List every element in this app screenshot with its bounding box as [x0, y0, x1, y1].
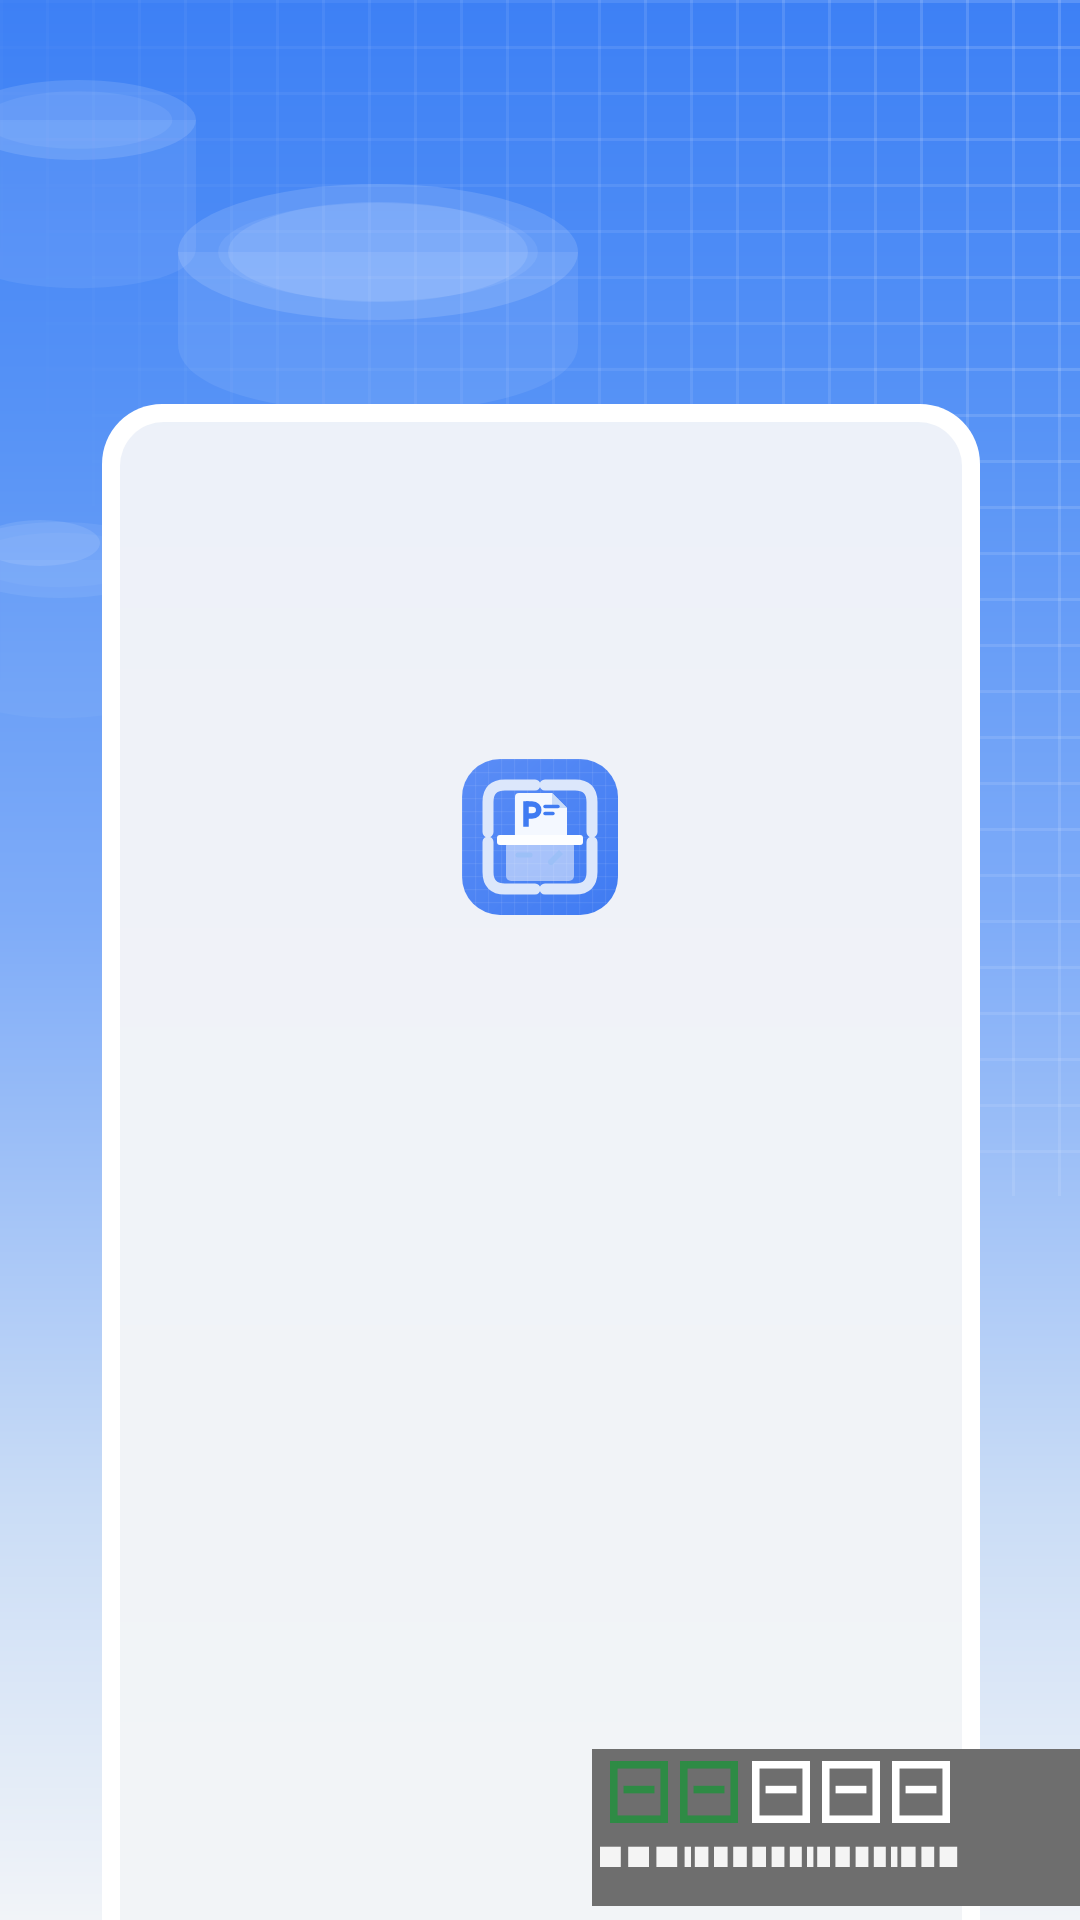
button[interactable]: App logo splash [0, 0, 1080, 1920]
